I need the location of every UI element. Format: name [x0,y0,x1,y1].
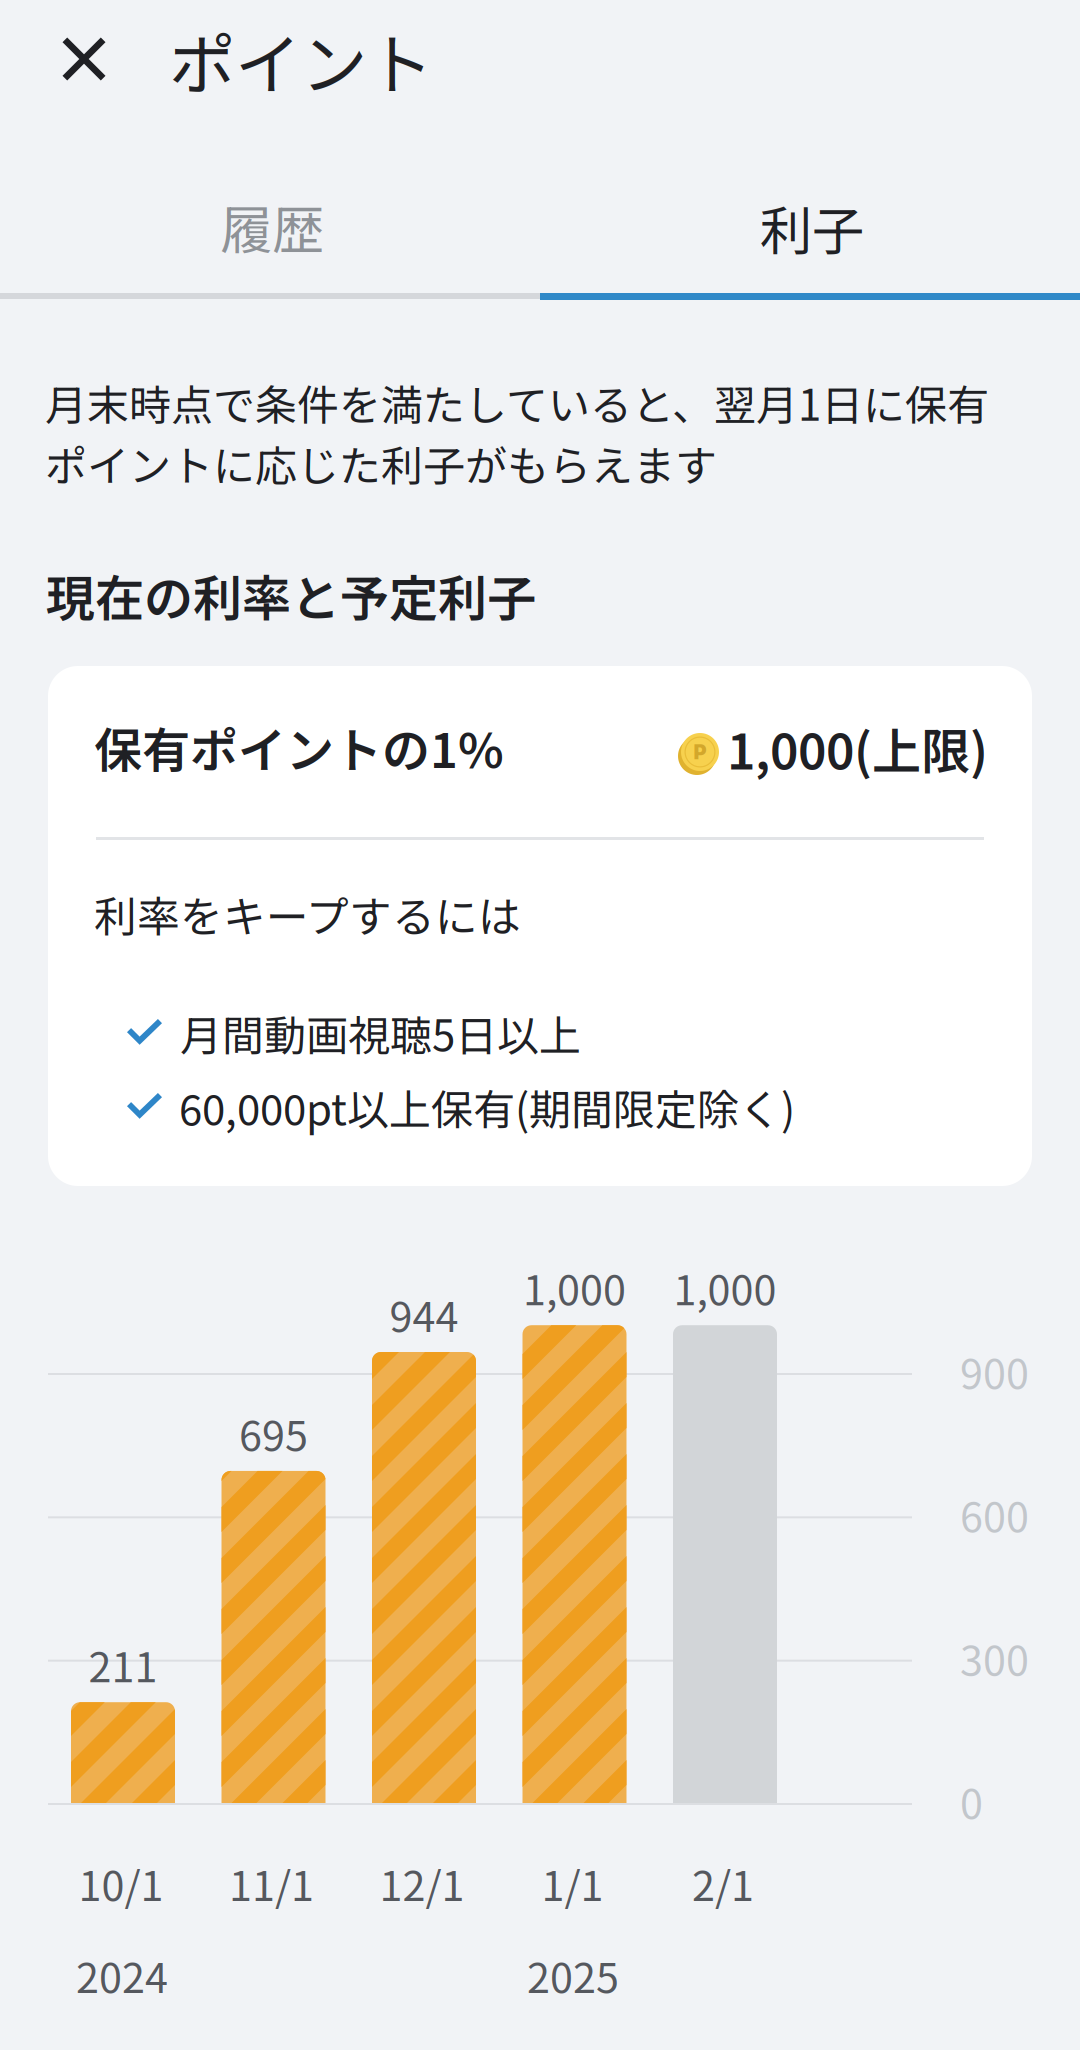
staticText: 695 [239,1403,308,1463]
staticText: 10/1 [78,1853,163,1913]
staticText: 月間動画視聴5日以上 [180,1003,581,1063]
button[interactable]: 利子 [542,167,1080,288]
staticText: 600 [960,1484,1029,1544]
staticText: 1,000(上限) [727,712,988,783]
staticText: 現在の利率と予定利子 [46,559,536,630]
staticText: 月末時点で条件を満たしていると、翌月1日に保有ポイントに応じた利子がもらえます [45,372,989,494]
staticText: 1,000 [673,1257,776,1317]
staticText: P [693,740,706,764]
staticText: 0 [960,1771,983,1831]
staticText: 2024 [76,1945,168,2005]
staticText: 60,000pt以上保有(期間限定除く) [179,1077,795,1137]
staticText: 1/1 [541,1853,603,1913]
button[interactable]: 閉じる [39,14,129,104]
staticText: 11/1 [229,1853,314,1913]
staticText: 利率をキープするには [94,883,521,945]
staticText: ポイント [169,12,433,108]
staticText: 2025 [527,1945,619,2005]
staticText: 12/1 [379,1853,464,1913]
staticText: 保有ポイントの1% [94,712,504,782]
staticText: 1,000 [523,1257,626,1317]
staticText: 2/1 [692,1853,754,1913]
button[interactable]: 履歴 [2,166,542,287]
staticText: 900 [960,1341,1029,1401]
staticText: 211 [88,1634,157,1694]
staticText: 利子 [760,190,864,265]
staticText: 履歴 [220,189,324,264]
staticText: 944 [389,1284,458,1344]
staticText: 300 [960,1628,1029,1688]
